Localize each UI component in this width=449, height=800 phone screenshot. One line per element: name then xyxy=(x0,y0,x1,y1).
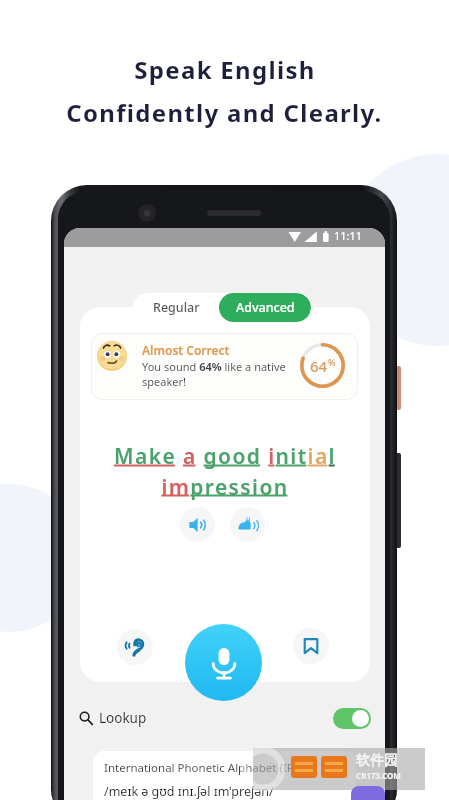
button[interactable]: Play audio xyxy=(180,507,215,542)
staticText: 11:11 xyxy=(334,228,363,243)
staticText: Advanced xyxy=(236,299,295,316)
button[interactable]: Play slowly xyxy=(230,507,265,542)
button[interactable]: International Phonetic Alphabet (IPA) xyxy=(93,751,356,800)
staticText: /meɪk ə gʊd ɪnɪ.ʃəl ɪmˈpreʃən/ xyxy=(104,783,274,800)
staticText: Regular xyxy=(153,299,200,316)
staticText: Make a good initial impression xyxy=(86,442,364,501)
button[interactable]: Lookup toggle xyxy=(333,708,371,729)
staticText: % xyxy=(328,356,336,368)
button[interactable]: Record xyxy=(185,624,262,701)
staticText: International Phonetic Alphabet (IPA) xyxy=(104,760,304,776)
staticText: Lookup xyxy=(99,709,147,727)
button[interactable]: Regular xyxy=(133,293,219,322)
staticText: Confidently and Clearly. xyxy=(66,96,383,129)
staticText: You sound 64% like a native speaker! xyxy=(142,359,307,389)
staticText: Speak English xyxy=(134,53,316,86)
staticText: Almost Correct xyxy=(142,342,230,358)
staticText: 软件园 xyxy=(356,752,398,770)
button[interactable]: Advanced xyxy=(219,293,311,322)
button[interactable]: Listen xyxy=(117,629,153,665)
staticText: CR173.COM xyxy=(356,770,401,781)
button[interactable]: Almost Correct xyxy=(91,333,358,400)
staticText: 64 xyxy=(310,356,328,376)
button[interactable]: Bookmark xyxy=(293,628,329,664)
